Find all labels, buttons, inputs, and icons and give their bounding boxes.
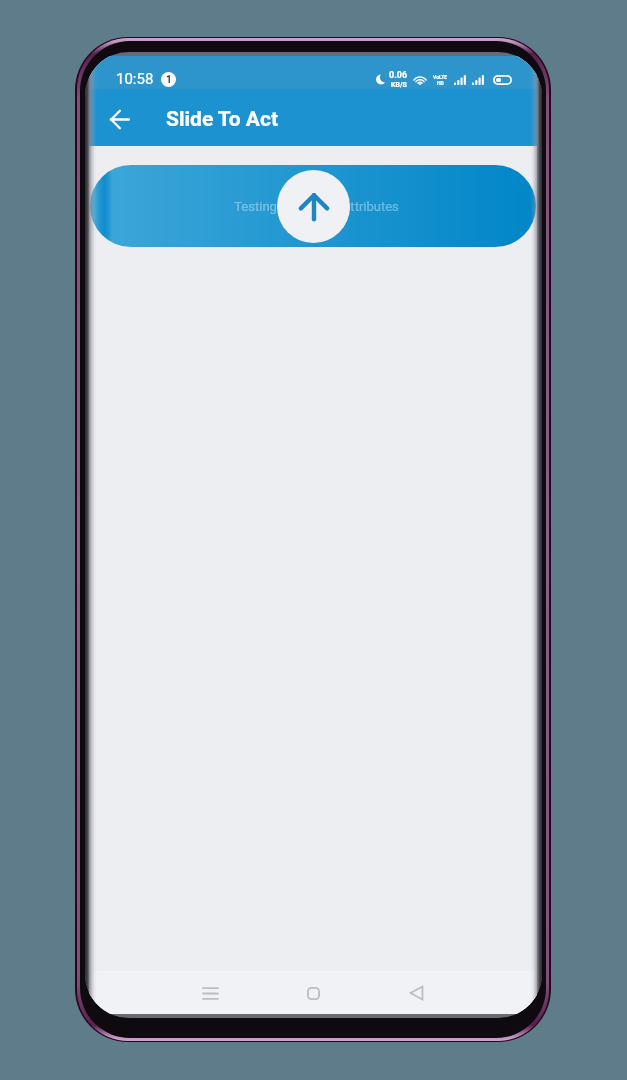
button[interactable]: Recent apps — [189, 972, 231, 1014]
staticText: Slide To Act — [166, 107, 279, 132]
staticText: VoLTE — [433, 74, 448, 80]
button[interactable]: Back — [395, 972, 437, 1014]
button[interactable]: Testing all the text attributes — [90, 165, 536, 247]
staticText: 1 — [166, 74, 172, 86]
staticText: 0.06 — [389, 70, 408, 81]
button[interactable]: Home — [292, 972, 334, 1014]
staticText: KB/S — [391, 81, 407, 89]
staticText: Testing all the text attributes — [234, 199, 399, 214]
staticText: HD — [437, 80, 444, 86]
staticText: 10:58 — [116, 70, 154, 88]
button[interactable]: Navigate up — [97, 97, 141, 141]
